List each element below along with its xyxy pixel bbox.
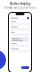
button[interactable]: Account [27,17,29,19]
staticText: Better display [10,2,30,5]
button[interactable]: Continue [21,66,29,69]
staticText: formats and guidelines [4,6,36,9]
